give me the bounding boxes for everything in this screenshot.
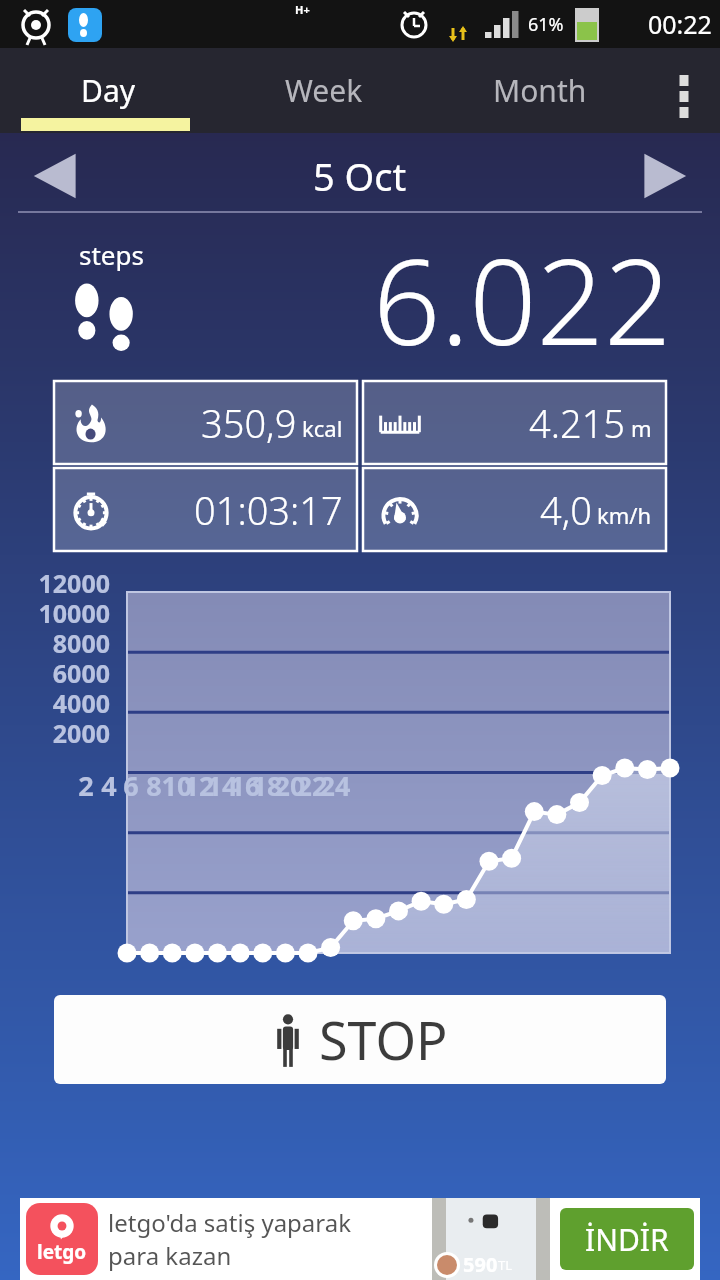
staticText: 18	[246, 767, 288, 804]
staticText: STOP	[319, 1004, 448, 1075]
button[interactable]: Day	[0, 48, 216, 133]
button[interactable]: İNDİR	[560, 1208, 694, 1270]
staticText: 12	[178, 767, 220, 804]
staticText: para kazan	[108, 1239, 232, 1272]
staticText: Week	[285, 70, 363, 111]
button[interactable]: Week	[216, 48, 432, 133]
staticText: steps	[79, 237, 144, 272]
staticText: 01:03:17	[194, 484, 343, 536]
staticText: 10000	[0, 596, 110, 630]
button[interactable]: Next day	[636, 148, 696, 204]
staticText: 8	[133, 767, 175, 804]
staticText: 4,0	[540, 484, 592, 536]
staticText: kcal	[302, 413, 343, 443]
staticText: km/h	[597, 500, 652, 530]
staticText: 8000	[0, 626, 110, 660]
staticText: 6	[110, 767, 152, 804]
button[interactable]: 350,9	[54, 381, 357, 464]
staticText: Day	[81, 70, 136, 111]
staticText: 14	[201, 767, 243, 804]
staticText: Month	[493, 70, 587, 111]
button[interactable]: STOP	[54, 995, 666, 1084]
staticText: TL	[498, 1256, 513, 1274]
staticText: 6000	[0, 656, 110, 690]
staticText: 2	[65, 767, 107, 804]
staticText: 12000	[0, 566, 110, 600]
staticText: 22	[291, 767, 333, 804]
staticText: 24	[314, 767, 356, 804]
staticText: letgo	[37, 1239, 87, 1265]
staticText: 00:22	[648, 7, 712, 41]
staticText: 20	[269, 767, 311, 804]
staticText: 4	[88, 767, 130, 804]
staticText: 2000	[0, 716, 110, 750]
staticText: 16	[224, 767, 266, 804]
button[interactable]: Previous day	[24, 148, 84, 204]
staticText: 6.022	[373, 219, 672, 369]
staticText: 590	[463, 1251, 498, 1278]
button[interactable]: 01:03:17	[54, 468, 357, 551]
staticText: İNDİR	[585, 1219, 669, 1260]
staticText: 61%	[528, 12, 564, 37]
button[interactable]: 4.215	[363, 381, 666, 464]
staticText: 4000	[0, 686, 110, 720]
staticText: 4.215	[529, 397, 626, 449]
button[interactable]: letgo	[20, 1198, 700, 1280]
button[interactable]: 4,0	[363, 468, 666, 551]
button[interactable]: More options	[648, 48, 720, 133]
staticText: 5 Oct	[313, 150, 407, 202]
staticText: 350,9	[201, 397, 297, 449]
staticText: m	[631, 413, 652, 443]
staticText: H+	[295, 2, 310, 17]
button[interactable]: Month	[432, 48, 648, 133]
staticText: letgo'da satiş yaparak	[108, 1206, 352, 1239]
staticText: 10	[156, 767, 198, 804]
